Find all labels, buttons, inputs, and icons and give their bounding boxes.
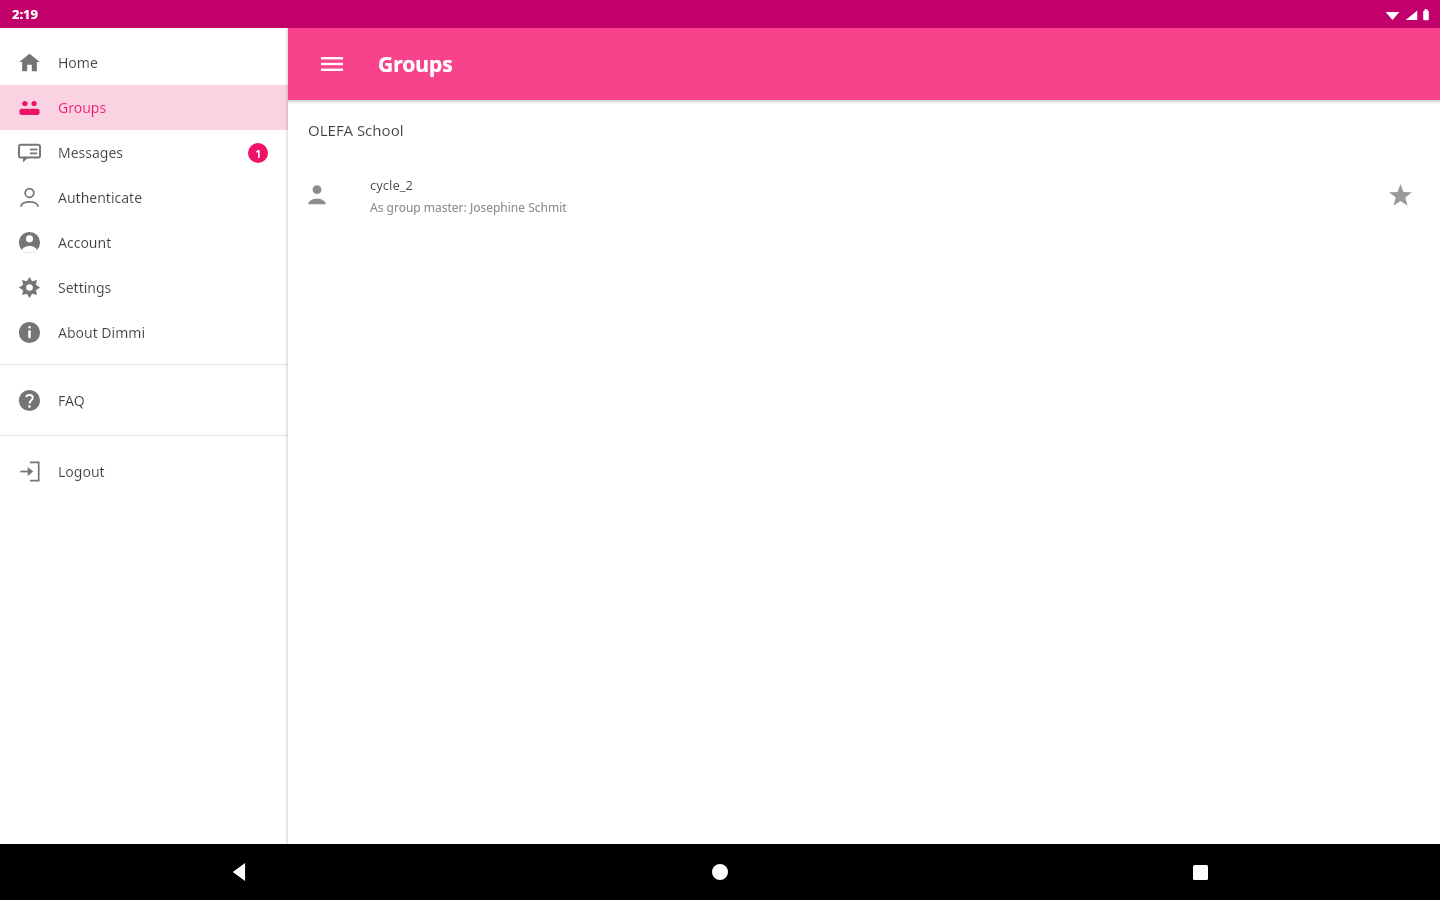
staticText: Logout (58, 462, 105, 481)
button[interactable]: Back (0, 844, 480, 900)
staticText: cycle_2 (370, 176, 414, 194)
button[interactable]: Account (0, 220, 288, 265)
button[interactable]: Home (480, 844, 960, 900)
staticText: About Dimmi (58, 323, 145, 342)
button[interactable]: Logout (0, 449, 288, 494)
staticText: Settings (58, 278, 112, 297)
staticText: As group master: Josephine Schmit (370, 199, 567, 215)
staticText: Messages (58, 143, 124, 162)
staticText: 2:19 (12, 5, 38, 23)
button[interactable]: Settings (0, 265, 288, 310)
button[interactable]: Open navigation menu (310, 42, 354, 86)
button[interactable]: Home (0, 40, 288, 85)
button[interactable]: Favourite (1378, 173, 1422, 217)
staticText: Authenticate (58, 188, 143, 207)
staticText: 1 (255, 146, 262, 161)
staticText: Groups (58, 98, 107, 117)
button[interactable]: Groups (0, 85, 288, 130)
staticText: FAQ (58, 391, 85, 410)
staticText: Home (58, 53, 98, 72)
button[interactable]: About Dimmi (0, 310, 288, 355)
button[interactable]: Authenticate (0, 175, 288, 220)
button[interactable]: Messages (0, 130, 288, 175)
staticText: Groups (378, 50, 453, 79)
button[interactable]: cycle_2 (288, 166, 1440, 224)
button[interactable]: FAQ (0, 378, 288, 423)
staticText: OLEFA School (308, 120, 404, 140)
button[interactable]: Recent apps (960, 844, 1440, 900)
staticText: Account (58, 233, 112, 252)
